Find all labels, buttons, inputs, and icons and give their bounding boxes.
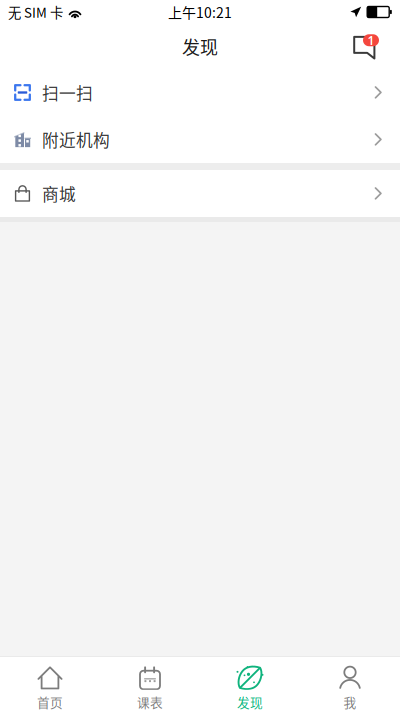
staticText: 商城 bbox=[42, 181, 76, 205]
staticText: 附近机构 bbox=[42, 127, 110, 151]
staticText: 无 SIM 卡 bbox=[8, 2, 63, 22]
button[interactable]: 附近机构 bbox=[0, 116, 400, 163]
button[interactable]: 消息 bbox=[346, 26, 386, 66]
button[interactable]: 扫一扫 bbox=[0, 69, 400, 116]
staticText: 首页 bbox=[37, 693, 63, 711]
button[interactable]: 我 bbox=[300, 657, 400, 711]
staticText: 发现 bbox=[182, 33, 218, 60]
staticText: 发现 bbox=[237, 693, 263, 711]
button[interactable]: 首页 bbox=[0, 657, 100, 711]
button[interactable]: 商城 bbox=[0, 170, 400, 217]
button[interactable]: 课表 bbox=[100, 657, 200, 711]
staticText: 我 bbox=[343, 693, 356, 711]
staticText: 课表 bbox=[137, 693, 163, 711]
button[interactable]: 发现 bbox=[200, 657, 300, 711]
staticText: 上午10:21 bbox=[168, 2, 232, 22]
staticText: 扫一扫 bbox=[42, 80, 93, 104]
staticText: 1 bbox=[367, 32, 374, 48]
